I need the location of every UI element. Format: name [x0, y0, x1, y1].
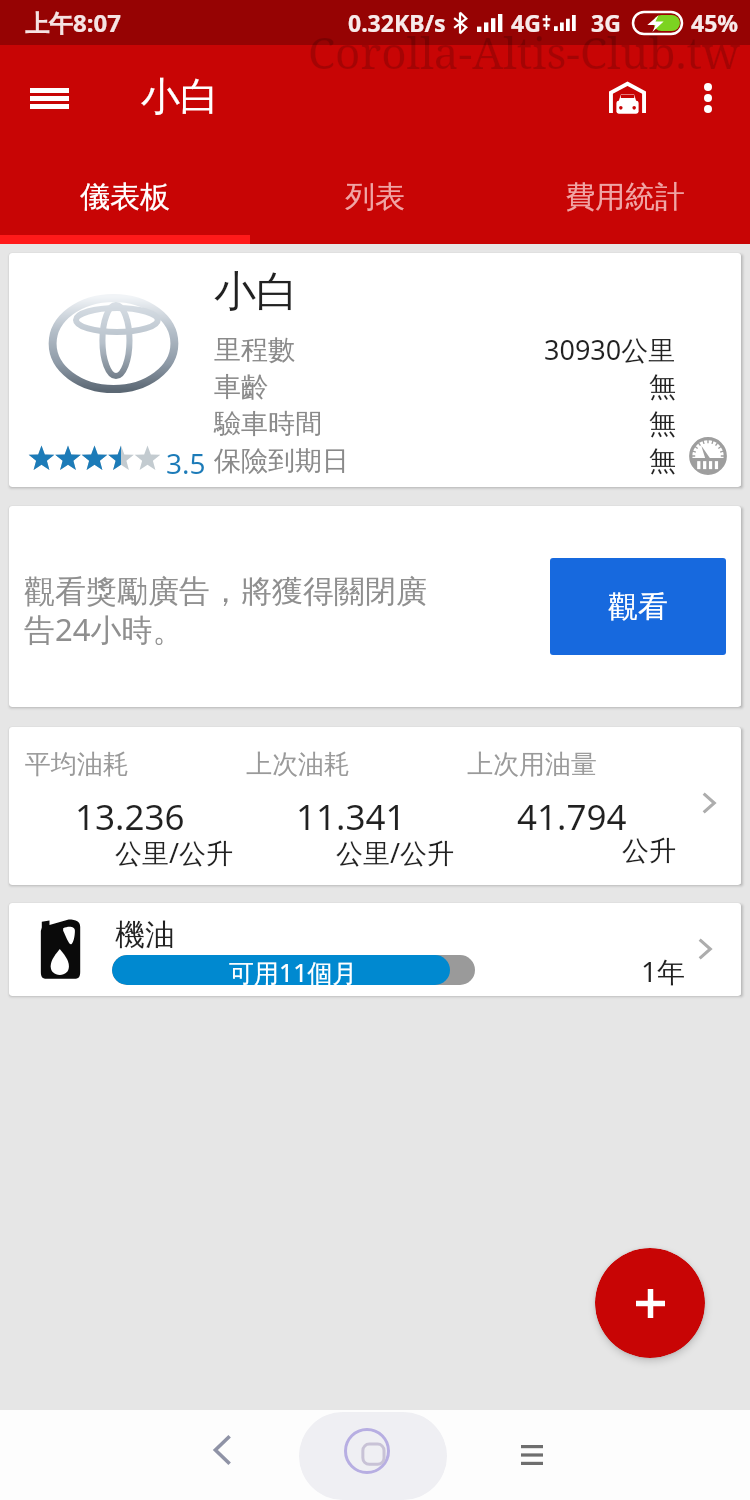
staticText: 車齡	[214, 370, 268, 404]
staticText: 觀看獎勵廣告，將獲得關閉廣 告24小時。	[24, 572, 464, 650]
staticText: 上次用油量	[467, 748, 597, 781]
button[interactable]: Recents	[488, 1421, 576, 1489]
staticText: 11.341	[296, 793, 406, 841]
staticText: 費用統計	[565, 178, 685, 216]
staticText: 4G	[511, 7, 541, 38]
staticText: 可用11個月	[229, 955, 358, 985]
button[interactable]: More options	[676, 60, 740, 136]
staticText: 里程數	[214, 333, 295, 367]
staticText: 公升	[622, 834, 676, 868]
button[interactable]: Garage	[581, 60, 673, 136]
staticText: 30930公里	[544, 331, 676, 368]
staticText: 上午8:07	[25, 6, 121, 39]
staticText: 無	[649, 444, 676, 478]
staticText: 觀看	[608, 588, 668, 626]
button[interactable]: 3.5	[9, 253, 741, 487]
staticText: 無	[649, 407, 676, 441]
staticText: 平均油耗	[25, 748, 129, 781]
button[interactable]: 列表	[250, 150, 500, 244]
staticText: 0.32KB/s	[348, 7, 446, 38]
staticText: 41.794	[517, 793, 627, 841]
staticText: 儀表板	[80, 178, 170, 216]
button[interactable]: 費用統計	[500, 150, 750, 244]
button[interactable]: Home	[299, 1412, 447, 1500]
staticText: 1年	[641, 952, 686, 990]
staticText: 公里/公升	[336, 834, 455, 871]
staticText: 公里/公升	[115, 834, 234, 871]
staticText: 保險到期日	[214, 444, 349, 478]
staticText: 3G	[591, 7, 621, 38]
staticText: 列表	[345, 178, 405, 216]
staticText: 小白	[141, 72, 219, 121]
staticText: Corolla-Altis-Club.tw	[308, 22, 740, 82]
button[interactable]: 觀看	[550, 558, 726, 655]
staticText: 3.5	[166, 444, 206, 482]
staticText: 小白	[214, 266, 298, 319]
button[interactable]: 機油	[9, 903, 741, 996]
button[interactable]: Back	[178, 1416, 266, 1484]
staticText: 無	[649, 370, 676, 404]
staticText: 機油	[115, 916, 175, 954]
button[interactable]: 平均油耗	[9, 727, 741, 885]
button[interactable]: 儀表板	[0, 150, 250, 244]
button[interactable]: Menu	[15, 64, 83, 132]
staticText: 驗車時間	[214, 407, 322, 441]
button[interactable]: Add	[595, 1248, 705, 1358]
staticText: 13.236	[75, 793, 185, 841]
button[interactable]: 觀看獎勵廣告，將獲得關閉廣 告24小時。	[9, 506, 741, 707]
staticText: 上次油耗	[246, 748, 350, 781]
staticText: 45%	[691, 7, 739, 38]
